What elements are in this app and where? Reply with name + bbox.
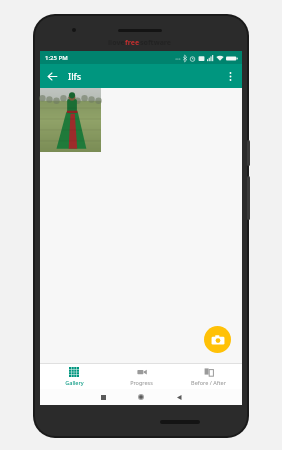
button[interactable]: Back	[169, 389, 189, 405]
staticText: Ilfs	[68, 70, 82, 82]
button[interactable]: Gallery	[40, 363, 108, 389]
staticText: 1:25 PM	[45, 54, 68, 62]
button[interactable]	[40, 88, 101, 152]
staticText: Before / After	[191, 379, 226, 386]
button[interactable]: Back	[42, 66, 62, 86]
button[interactable]: Progress	[108, 363, 175, 389]
staticText: free	[125, 38, 140, 48]
button[interactable]: Take photo	[204, 326, 231, 353]
button[interactable]: Home	[131, 389, 151, 405]
button[interactable]: More options	[220, 66, 240, 86]
button[interactable]: Before / After	[175, 363, 242, 389]
staticText: Gallery	[65, 379, 84, 386]
button[interactable]: Recent apps	[93, 389, 113, 405]
staticText: Progress	[130, 379, 153, 386]
